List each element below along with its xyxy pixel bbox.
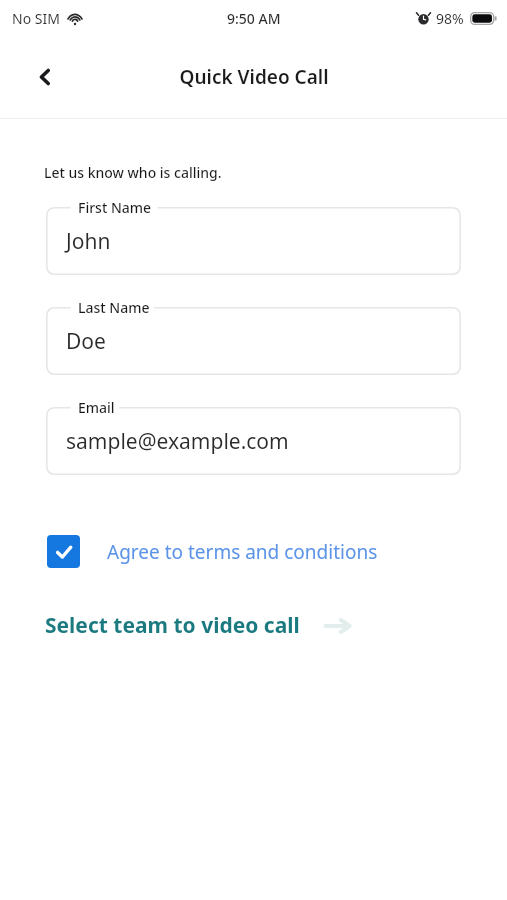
staticText: Email xyxy=(78,398,115,417)
button[interactable]: sample@example.com xyxy=(46,407,461,475)
staticText: No SIM xyxy=(12,9,60,28)
staticText: 9:50 AM xyxy=(227,9,281,28)
staticText: Let us know who is calling. xyxy=(44,163,222,182)
staticText: First Name xyxy=(78,198,152,217)
staticText: Agree to terms and conditions xyxy=(107,539,378,565)
staticText: sample@example.com xyxy=(66,427,289,456)
button[interactable]: Agree to terms and conditions xyxy=(40,528,483,575)
staticText: John xyxy=(66,227,111,256)
staticText: Last Name xyxy=(78,298,150,317)
button[interactable]: Doe xyxy=(46,307,461,375)
staticText: Select team to video call xyxy=(45,611,300,640)
staticText: Quick Video Call xyxy=(179,64,329,90)
button[interactable]: Select team to video call xyxy=(45,611,483,640)
staticText: 98% xyxy=(436,9,464,28)
staticText: Doe xyxy=(66,327,106,356)
button[interactable]: John xyxy=(46,207,461,275)
button[interactable]: Back xyxy=(22,54,68,100)
